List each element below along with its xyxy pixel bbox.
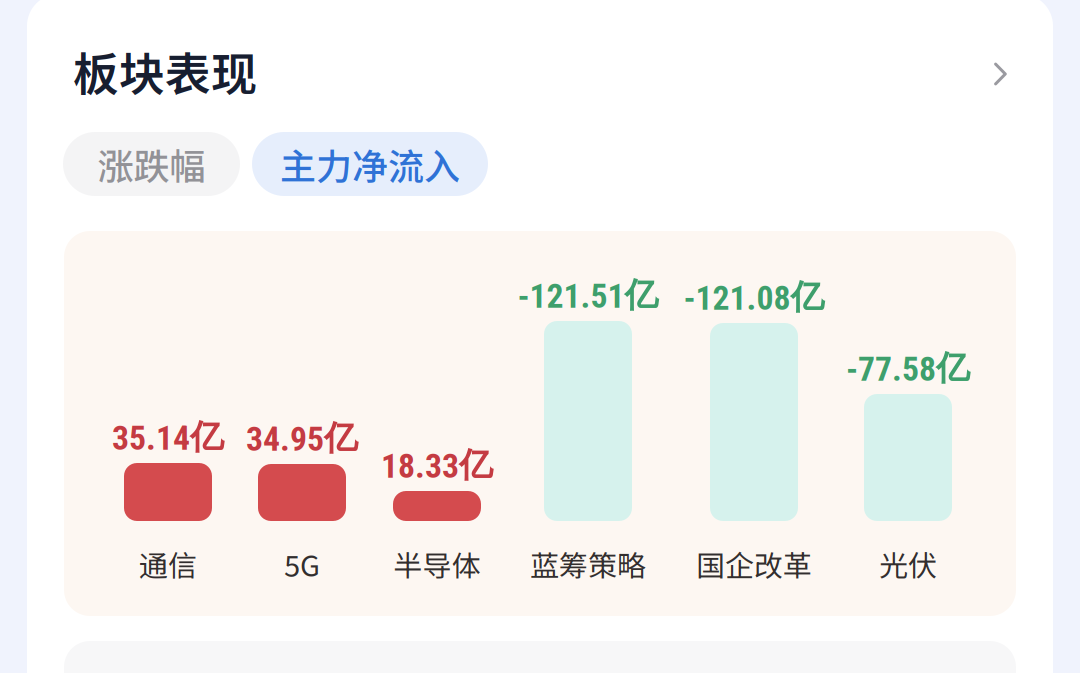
button[interactable]: -77.58亿 xyxy=(808,177,1008,577)
staticText: 光伏 xyxy=(879,543,937,585)
staticText: 国企改革 xyxy=(696,543,812,585)
button[interactable]: 34.95亿 xyxy=(202,177,402,577)
staticText: 涨跌幅 xyxy=(97,138,205,190)
button[interactable]: 主力净流入 xyxy=(252,132,488,196)
button[interactable]: 35.14亿 xyxy=(68,177,268,577)
button[interactable]: 板块表现 xyxy=(73,42,1007,106)
staticText: 蓝筹策略 xyxy=(530,543,646,585)
staticText: 通信 xyxy=(139,543,197,585)
staticText: 5G xyxy=(284,543,320,585)
staticText: 半导体 xyxy=(393,543,480,585)
staticText: 主力净流入 xyxy=(280,138,460,190)
button[interactable]: 涨跌幅 xyxy=(63,132,240,196)
button[interactable]: -121.08亿 xyxy=(654,177,854,577)
staticText: 板块表现 xyxy=(73,38,257,104)
button[interactable]: -121.51亿 xyxy=(488,177,688,577)
staticText: -121.51亿 xyxy=(517,274,658,316)
button[interactable]: 18.33亿 xyxy=(337,177,537,577)
staticText: -77.58亿 xyxy=(846,347,970,389)
staticText: 35.14亿 xyxy=(112,416,224,458)
staticText: 34.95亿 xyxy=(246,417,358,459)
staticText: 18.33亿 xyxy=(381,444,493,486)
staticText: -121.08亿 xyxy=(683,276,824,318)
